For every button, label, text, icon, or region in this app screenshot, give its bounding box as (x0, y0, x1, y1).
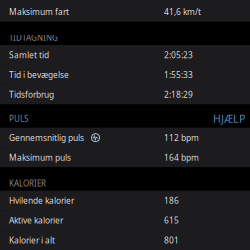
staticText: HJÆLP (213, 112, 245, 126)
staticText: Gennemsnitlig puls (9, 132, 84, 143)
staticText: TIDTAGNING (9, 32, 58, 43)
staticText: Hvilende kalorier (9, 195, 74, 206)
button[interactable]: HJÆLP (213, 112, 245, 126)
staticText: 164 bpm (164, 152, 199, 163)
staticText: Tid i bevægelse (9, 69, 69, 80)
button[interactable]: Gennemsnitlig puls (0, 128, 250, 147)
staticText: 112 bpm (164, 132, 199, 143)
button[interactable]: Hvilende kalorier (0, 191, 250, 210)
button[interactable]: Maksimum puls (0, 147, 250, 167)
staticText: 186 (164, 195, 179, 206)
staticText: 2:18:29 (164, 89, 193, 100)
staticText: KALORIER (9, 178, 46, 189)
staticText: Maksimum puls (9, 152, 71, 163)
staticText: 1:55:33 (164, 69, 193, 80)
button[interactable]: Tid i bevægelse (0, 65, 250, 85)
staticText: PULS (9, 113, 28, 124)
staticText: Tidsforbrug (9, 89, 54, 100)
button[interactable]: Aktive kalorier (0, 210, 250, 230)
staticText: Kalorier i alt (9, 234, 55, 246)
staticText: Aktive kalorier (9, 215, 63, 226)
button[interactable]: Tidsforbrug (0, 85, 250, 104)
staticText: Maksimum fart (9, 6, 69, 17)
staticText: Samlet tid (9, 49, 49, 61)
button[interactable]: Maksimum fart (0, 2, 250, 22)
button[interactable]: Samlet tid (0, 45, 250, 65)
staticText: 2:05:23 (164, 49, 193, 61)
staticText: 615 (164, 215, 179, 226)
staticText: 801 (164, 234, 179, 246)
button[interactable]: Kalorier i alt (0, 230, 250, 250)
staticText: 41,6 km/t (164, 6, 201, 17)
